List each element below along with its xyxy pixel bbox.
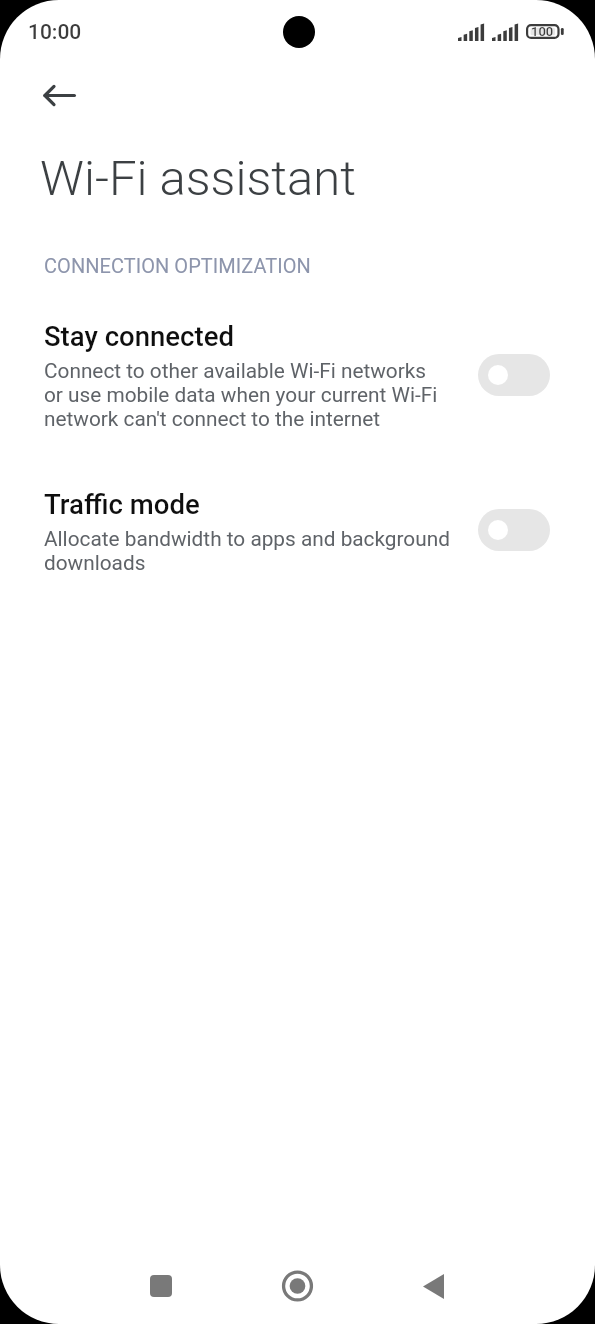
staticText: network can't connect to the internet: [44, 407, 381, 431]
staticText: Traffic mode: [44, 488, 200, 520]
staticText: 10:00: [28, 20, 82, 45]
button[interactable]: Recent apps: [126, 1251, 196, 1321]
staticText: Stay connected: [44, 320, 234, 352]
button[interactable]: Stay connected: [0, 320, 595, 440]
staticText: Allocate bandwidth to apps and backgroun…: [44, 527, 450, 551]
staticText: or use mobile data when your current Wi-…: [44, 383, 438, 407]
staticText: Connect to other available Wi-Fi network…: [44, 359, 427, 383]
button[interactable]: Traffic mode: [0, 488, 595, 584]
button[interactable]: Home: [262, 1251, 332, 1321]
staticText: downloads: [44, 551, 146, 575]
button[interactable]: Navigate up: [25, 61, 94, 130]
staticText: CONNECTION OPTIMIZATION: [44, 254, 311, 277]
button[interactable]: Back: [398, 1251, 468, 1321]
button[interactable]: Toggle: [478, 509, 550, 551]
button[interactable]: Toggle: [478, 354, 550, 396]
staticText: 100: [531, 24, 554, 39]
staticText: Wi-Fi assistant: [40, 150, 356, 207]
